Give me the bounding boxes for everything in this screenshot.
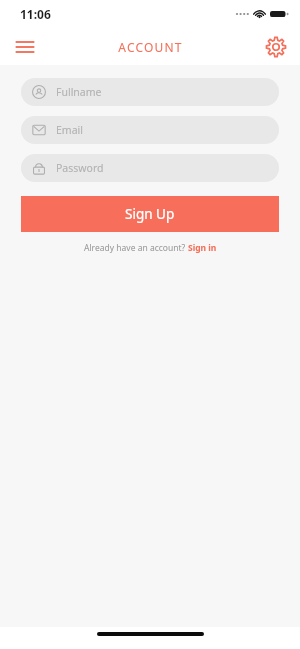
staticText: Already have an account? <box>84 242 188 254</box>
staticText: Password <box>56 161 104 175</box>
button[interactable]: Menu <box>12 34 38 60</box>
button[interactable]: Fullname <box>21 78 279 106</box>
staticText: ACCOUNT <box>118 39 183 55</box>
button[interactable]: Sign in <box>188 242 217 254</box>
staticText: Fullname <box>56 85 102 99</box>
staticText: Email <box>56 123 83 137</box>
staticText: Sign Up <box>125 205 175 223</box>
staticText: 11:06 <box>20 6 51 22</box>
button[interactable]: Sign Up <box>21 196 279 232</box>
button[interactable]: Password <box>21 154 279 182</box>
button[interactable]: Email <box>21 116 279 144</box>
staticText: Sign in <box>188 242 217 254</box>
button[interactable]: Settings <box>264 35 288 59</box>
